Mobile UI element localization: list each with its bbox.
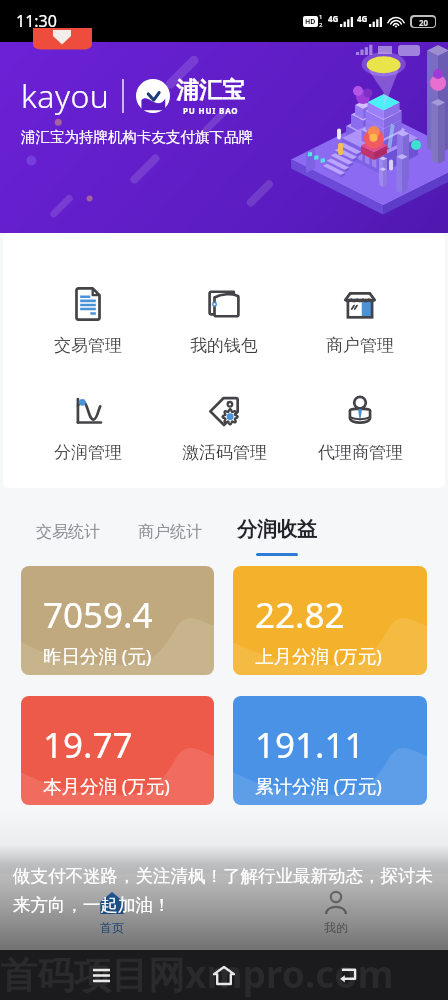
staticText: 上月分润 (万元) [255, 643, 382, 668]
staticText: 1 [319, 13, 323, 21]
staticText: 商户统计 [138, 522, 202, 542]
staticText: 浦汇宝 [176, 76, 245, 105]
button[interactable]: 分润收益 [237, 517, 317, 556]
button[interactable]: 首页 [93, 884, 131, 941]
staticText: 浦汇宝为持牌机构卡友支付旗下品牌 [21, 128, 253, 146]
button[interactable]: 7059.4 [21, 566, 214, 675]
staticText: PU HUI BAO [183, 105, 239, 116]
staticText: 我的 [324, 920, 348, 935]
staticText: 分润管理 [54, 442, 122, 463]
staticText: 4G [328, 13, 339, 24]
staticText: 首页 [100, 920, 124, 935]
staticText: 22.82 [255, 591, 345, 639]
staticText: HD [305, 17, 316, 27]
button[interactable]: 19.77 [21, 696, 214, 805]
button[interactable]: 22.82 [233, 566, 427, 675]
staticText: 2 [319, 21, 323, 29]
button[interactable]: 我的钱包 [156, 286, 292, 356]
staticText: 4G [357, 13, 368, 24]
staticText: 我的钱包 [190, 335, 258, 356]
button[interactable]: 我的 [317, 884, 355, 941]
button[interactable]: 代理商管理 [292, 393, 428, 463]
button[interactable]: 分润管理 [20, 393, 156, 463]
button[interactable]: 商户统计 [138, 522, 202, 556]
button[interactable]: 激活码管理 [156, 393, 292, 463]
staticText: 20 [419, 17, 429, 27]
staticText: 本月分润 (万元) [43, 773, 170, 798]
staticText: 19.77 [43, 721, 133, 769]
staticText: 191.11 [255, 721, 365, 769]
button[interactable]: 交易管理 [20, 286, 156, 356]
staticText: 商户管理 [326, 335, 394, 356]
button[interactable]: 交易统计 [36, 522, 100, 556]
staticText: 交易统计 [36, 522, 100, 542]
staticText: 分润收益 [237, 517, 317, 542]
staticText: 代理商管理 [318, 442, 403, 463]
button[interactable]: Recent apps [79, 953, 123, 997]
staticText: 交易管理 [54, 335, 122, 356]
staticText: 累计分润 (万元) [255, 773, 382, 798]
staticText: 11:30 [16, 10, 57, 32]
staticText: 做支付不迷路，关注清枫！了解行业最新动态，探讨未 来方向，一起加油！ [13, 865, 433, 916]
staticText: 7059.4 [43, 591, 153, 639]
staticText: 激活码管理 [182, 442, 267, 463]
button[interactable]: 191.11 [233, 696, 427, 805]
button[interactable]: 商户管理 [292, 286, 428, 356]
staticText: 首码项目网xmpro.com [0, 948, 394, 998]
button[interactable]: Home [202, 953, 246, 997]
staticText: 昨日分润 (元) [43, 643, 152, 668]
button[interactable]: Back [325, 953, 369, 997]
staticText: kayou [21, 74, 110, 118]
